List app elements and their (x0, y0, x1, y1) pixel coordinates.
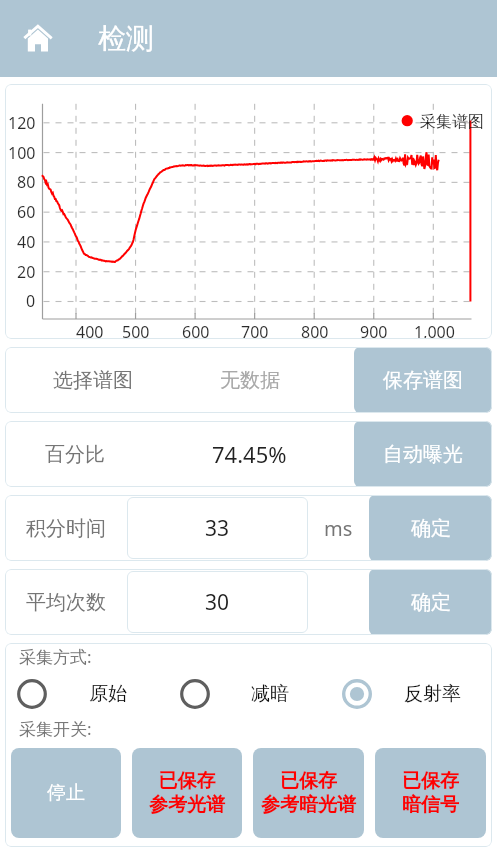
staticText: 无数据 (220, 368, 280, 393)
staticText: 已保存 参考光谱 (149, 769, 225, 817)
staticText: 采集开关: (19, 717, 92, 740)
staticText: 减暗 (251, 682, 289, 706)
staticText: 1,000 (414, 321, 455, 339)
staticText: 80 (17, 171, 36, 193)
staticText: 0 (26, 290, 36, 312)
button[interactable]: 减暗 (168, 677, 330, 711)
button[interactable]: 停止 (11, 748, 121, 838)
button[interactable]: 已保存 参考光谱 (132, 748, 242, 838)
staticText: 60 (17, 201, 36, 223)
staticText: 百分比 (45, 442, 105, 467)
button[interactable]: 已保存 暗信号 (375, 748, 486, 838)
staticText: 已保存 参考暗光谱 (261, 769, 356, 817)
staticText: 选择谱图 (53, 368, 133, 393)
staticText: 确定 (411, 516, 451, 541)
staticText: 反射率 (404, 682, 461, 706)
staticText: 已保存 暗信号 (402, 769, 459, 817)
staticText: 保存谱图 (383, 368, 463, 393)
button[interactable]: 原始 (5, 677, 168, 711)
staticText: ms (324, 515, 353, 542)
staticText: 400 (76, 321, 104, 339)
button[interactable]: 确定 (369, 495, 492, 561)
staticText: 停止 (47, 781, 85, 805)
staticText: 检测 (98, 21, 154, 56)
button[interactable]: 反射率 (330, 677, 492, 711)
staticText: 100 (8, 142, 36, 164)
staticText: 700 (241, 321, 269, 339)
staticText: 采集谱图 (420, 112, 484, 132)
staticText: 900 (360, 321, 388, 339)
staticText: 74.45% (212, 439, 287, 469)
button[interactable]: 自动曝光 (354, 421, 492, 487)
staticText: 30 (205, 588, 230, 617)
staticText: 原始 (89, 682, 127, 706)
staticText: 确定 (411, 590, 451, 615)
button[interactable]: 保存谱图 (354, 347, 492, 413)
button[interactable]: Home (20, 21, 56, 57)
staticText: 20 (17, 261, 36, 283)
staticText: 33 (205, 514, 230, 543)
staticText: 平均次数 (26, 590, 106, 615)
staticText: 积分时间 (26, 516, 106, 541)
button[interactable]: 确定 (369, 569, 492, 635)
staticText: 800 (301, 321, 329, 339)
staticText: 500 (122, 321, 150, 339)
staticText: 40 (17, 231, 36, 253)
button[interactable]: 已保存 参考暗光谱 (253, 748, 364, 838)
staticText: 自动曝光 (383, 442, 463, 467)
staticText: 600 (182, 321, 210, 339)
staticText: 采集方式: (19, 645, 92, 668)
staticText: 120 (8, 112, 36, 134)
